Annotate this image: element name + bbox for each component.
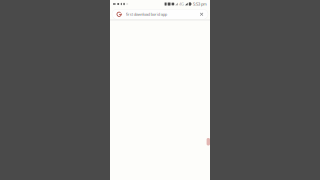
button[interactable]: first download borid app (112, 9, 197, 19)
staticText: 4G (179, 1, 184, 7)
staticText: 5:53 pm (193, 1, 207, 7)
staticText: first download borid app (126, 12, 167, 17)
button[interactable]: Clear (197, 9, 206, 19)
